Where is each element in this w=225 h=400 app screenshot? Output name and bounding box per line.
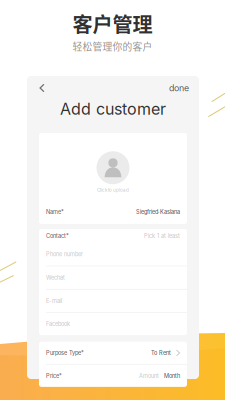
staticText: Siegfried·Kaslana (136, 209, 180, 215)
staticText: Phone number (46, 251, 83, 258)
staticText: Wechat (46, 274, 65, 281)
staticText: Facebook (46, 321, 70, 327)
button[interactable]: Contact* (39, 229, 187, 243)
staticText: Purpose Type* (46, 350, 84, 356)
staticText: To Rent (151, 350, 171, 356)
button[interactable]: done (169, 79, 189, 97)
button[interactable]: Purpose Type* (39, 342, 187, 364)
staticText: 客户管理 (72, 9, 152, 38)
button[interactable]: Facebook (39, 313, 187, 335)
staticText: Name* (46, 209, 64, 215)
button[interactable]: Wechat (39, 266, 187, 289)
staticText: done (169, 83, 189, 93)
staticText: Pick 1 at least (144, 233, 180, 239)
button[interactable]: Phone number (39, 243, 187, 266)
staticText: Amount (139, 372, 159, 379)
staticText: Price* (46, 372, 62, 379)
button[interactable]: Price* (39, 365, 187, 387)
staticText: Click to upload (97, 187, 129, 193)
staticText: E-mail (46, 297, 62, 304)
button[interactable]: E-mail (39, 290, 187, 312)
staticText: Add customer (60, 99, 166, 119)
staticText: Month (164, 372, 180, 379)
staticText: 轻松管理你的客户 (72, 39, 152, 53)
button[interactable]: Name* (39, 200, 187, 224)
button[interactable]: Back (34, 79, 50, 97)
staticText: Contact* (46, 233, 69, 239)
